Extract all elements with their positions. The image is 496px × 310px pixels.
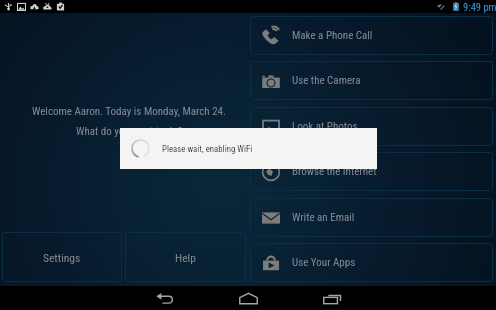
button[interactable]: Recent apps: [304, 286, 360, 310]
staticText: Welcome Aaron. Today is Monday, March 24…: [32, 105, 226, 118]
button[interactable]: Browse the Internet: [250, 152, 493, 191]
staticText: Please wait, enabling WiFi: [162, 144, 253, 154]
button[interactable]: Use the Camera: [250, 61, 493, 100]
staticText: Look at Photos: [292, 120, 358, 133]
button[interactable]: Home: [220, 286, 276, 310]
staticText: Make a Phone Call: [292, 29, 373, 42]
staticText: Use the Camera: [292, 74, 361, 87]
staticText: What do you want to do?: [76, 125, 183, 138]
button[interactable]: Use Your Apps: [250, 243, 493, 282]
staticText: Browse the Internet: [292, 165, 377, 178]
staticText: Use Your Apps: [292, 256, 356, 269]
button[interactable]: Back: [137, 286, 193, 310]
button[interactable]: Settings: [2, 232, 122, 282]
button[interactable]: Make a Phone Call: [250, 16, 493, 55]
staticText: 9:49 pm: [463, 1, 496, 13]
button[interactable]: Look at Photos: [250, 107, 493, 146]
button[interactable]: Help: [125, 232, 246, 282]
staticText: Settings: [43, 251, 81, 264]
staticText: Help: [175, 251, 196, 264]
button[interactable]: Write an Email: [250, 198, 493, 237]
staticText: Write an Email: [292, 211, 355, 224]
